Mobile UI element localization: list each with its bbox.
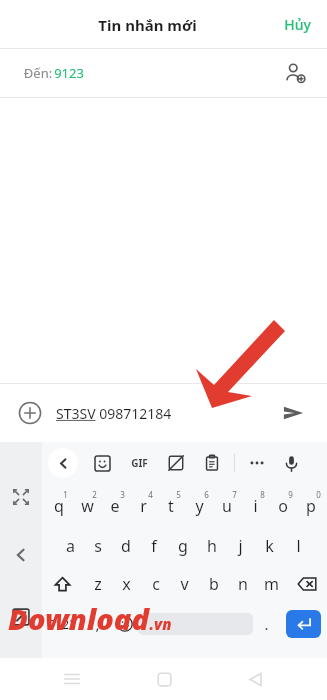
staticText: x <box>122 573 131 595</box>
button[interactable]: u <box>213 484 241 524</box>
staticText: 0 <box>316 489 321 500</box>
staticText: n <box>238 573 248 595</box>
staticText: 5 <box>176 489 181 500</box>
staticText: GIF <box>131 456 148 470</box>
staticText: k <box>265 535 274 557</box>
staticText: 4 <box>148 489 153 500</box>
staticText: Hủy <box>284 15 311 34</box>
button[interactable]: v <box>170 564 199 604</box>
staticText: b <box>209 573 219 595</box>
button[interactable]: Space <box>138 613 253 635</box>
staticText: w <box>81 495 94 517</box>
staticText: s <box>94 535 102 557</box>
staticText: 3 <box>120 489 125 500</box>
staticText: u <box>222 495 232 517</box>
button[interactable]: l <box>284 524 313 564</box>
button[interactable]: r <box>129 484 157 524</box>
button[interactable]: Recents <box>52 659 92 699</box>
button[interactable]: Send <box>273 393 313 433</box>
button[interactable]: GIF <box>124 448 154 478</box>
staticText: z <box>94 573 102 595</box>
button[interactable]: Home <box>144 659 184 699</box>
staticText: g <box>178 535 188 557</box>
button[interactable]: j <box>226 524 255 564</box>
button[interactable]: . <box>253 604 280 644</box>
button[interactable]: g <box>168 524 197 564</box>
staticText: Download <box>8 599 149 638</box>
button[interactable]: x <box>112 564 141 604</box>
button[interactable]: Translate <box>162 449 190 477</box>
staticText: 7 <box>232 489 237 500</box>
staticText: , <box>95 614 100 634</box>
staticText: Tin nhắn mới <box>98 15 197 35</box>
button[interactable]: Clipboard <box>198 449 226 477</box>
button[interactable]: p <box>297 484 325 524</box>
button[interactable]: Enter <box>286 610 321 638</box>
staticText: j <box>238 535 243 557</box>
staticText: a <box>66 535 75 557</box>
staticText: t <box>168 495 174 517</box>
staticText: q <box>54 495 64 517</box>
staticText: 9123 <box>54 64 84 82</box>
staticText: e <box>110 495 120 517</box>
staticText: . <box>264 614 269 634</box>
button[interactable]: Shift <box>42 564 83 604</box>
staticText: h <box>207 535 217 557</box>
staticText: 6 <box>204 489 209 500</box>
staticText: o <box>278 495 288 517</box>
button[interactable]: k <box>255 524 284 564</box>
button[interactable]: Stickers <box>88 449 116 477</box>
staticText: l <box>296 535 301 557</box>
button[interactable]: y <box>185 484 213 524</box>
staticText: i <box>253 495 258 517</box>
button[interactable]: n <box>228 564 257 604</box>
staticText: 1 <box>63 489 68 500</box>
staticText: ?123 <box>50 616 76 632</box>
button[interactable]: b <box>199 564 228 604</box>
button[interactable]: Handwriting <box>6 602 36 632</box>
staticText: y <box>195 495 204 517</box>
staticText: d <box>121 535 131 557</box>
button[interactable]: d <box>112 524 140 564</box>
button[interactable]: i <box>241 484 269 524</box>
button[interactable]: Back <box>235 659 275 699</box>
staticText: .vn <box>149 614 172 634</box>
button[interactable]: z <box>83 564 112 604</box>
button[interactable]: Resize keyboard <box>6 482 36 512</box>
button[interactable]: More options <box>243 449 271 477</box>
button[interactable]: Backspace <box>286 564 327 604</box>
button[interactable]: f <box>140 524 168 564</box>
staticText: m <box>264 573 279 595</box>
button[interactable]: ?123 <box>42 604 84 644</box>
staticText: r <box>140 495 147 517</box>
staticText: ST3SV 098712184 <box>56 404 172 423</box>
button[interactable]: t <box>157 484 185 524</box>
button[interactable]: , <box>84 604 111 644</box>
staticText: Đến: <box>22 64 54 82</box>
button[interactable]: o <box>269 484 297 524</box>
button[interactable]: e <box>101 484 129 524</box>
button[interactable]: a <box>56 524 84 564</box>
staticText: 9 <box>288 489 293 500</box>
button[interactable]: h <box>197 524 226 564</box>
staticText: 2 <box>92 489 97 500</box>
staticText: p <box>306 495 316 517</box>
button[interactable]: Voice input <box>277 449 305 477</box>
button[interactable]: q <box>44 484 73 524</box>
staticText: c <box>152 573 160 595</box>
button[interactable]: Collapse toolbar <box>48 448 78 478</box>
staticText: v <box>180 573 189 595</box>
button[interactable]: Back <box>6 540 36 570</box>
button[interactable]: Add contact <box>277 55 313 91</box>
button[interactable]: Hủy <box>268 7 327 42</box>
button[interactable]: m <box>257 564 286 604</box>
staticText: f <box>151 535 157 557</box>
button[interactable]: Attach <box>12 395 48 431</box>
staticText: 8 <box>260 489 265 500</box>
button[interactable]: s <box>84 524 112 564</box>
button[interactable]: Emoji <box>111 604 138 644</box>
button[interactable]: w <box>73 484 101 524</box>
button[interactable]: c <box>141 564 170 604</box>
